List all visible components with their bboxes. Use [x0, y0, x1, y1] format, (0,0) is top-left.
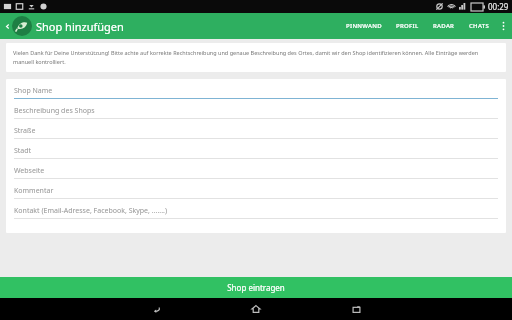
staticText: Webseite [14, 166, 45, 176]
staticText: Vielen Dank für Deine Unterstützung! Bit… [13, 49, 499, 66]
button[interactable]: Zurück [106, 298, 206, 320]
button[interactable]: Beschreibung des Shops [14, 104, 498, 124]
button[interactable]: RADAR [426, 13, 462, 39]
staticText: Beschreibung des Shops [14, 106, 95, 116]
staticText: Shop Name [14, 86, 53, 96]
button[interactable]: CHATS [462, 13, 496, 39]
staticText: PINNWAND [346, 22, 382, 30]
staticText: Shop hinzufügen [36, 19, 124, 34]
button[interactable]: Startseite [206, 298, 306, 320]
staticText: Straße [14, 126, 36, 136]
button[interactable]: Shop Name [14, 84, 498, 104]
staticText: CHATS [469, 22, 489, 30]
button[interactable]: Übersicht [306, 298, 406, 320]
staticText: Shop eintragen [227, 282, 285, 293]
staticText: RADAR [433, 22, 455, 30]
button[interactable]: PINNWAND [339, 13, 389, 39]
button[interactable]: PROFIL [389, 13, 426, 39]
button[interactable]: Nach oben [3, 16, 126, 36]
button[interactable]: Weitere Optionen [496, 13, 510, 39]
button[interactable]: Webseite [14, 164, 498, 184]
staticText: Kontakt (Email-Adresse, Facebook, Skype,… [14, 206, 167, 216]
button[interactable]: Shop eintragen [0, 277, 512, 298]
button[interactable]: Straße [14, 124, 498, 144]
button[interactable]: Stadt [14, 144, 498, 164]
staticText: 00:29 [488, 1, 509, 12]
button[interactable]: Kontakt (Email-Adresse, Facebook, Skype,… [14, 204, 498, 224]
button[interactable]: Kommentar [14, 184, 498, 204]
staticText: Kommentar [14, 186, 54, 196]
staticText: Stadt [14, 146, 32, 156]
staticText: PROFIL [396, 22, 419, 30]
